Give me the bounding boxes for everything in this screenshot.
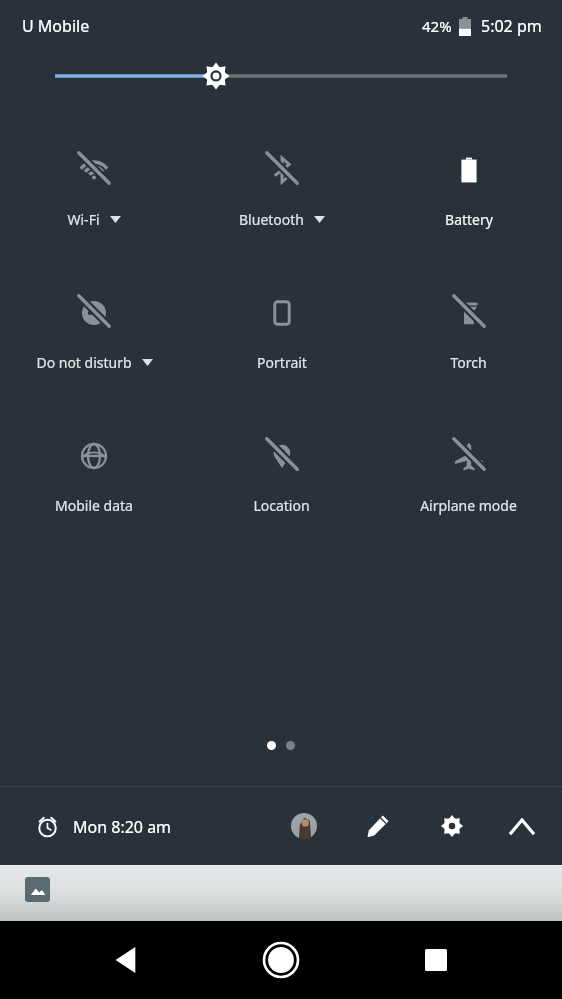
button[interactable]: Airplane mode [375, 430, 562, 521]
button[interactable]: User profile [286, 808, 322, 844]
staticText: Airplane mode [420, 496, 517, 515]
button[interactable]: Mon 8:20 am [36, 815, 172, 838]
staticText: 42% [422, 16, 452, 36]
staticText: Do not disturb [36, 353, 132, 372]
staticText: Mon 8:20 am [73, 816, 172, 838]
button[interactable]: Battery [375, 144, 562, 235]
staticText: Mobile data [55, 496, 133, 515]
button[interactable]: Edit [360, 808, 396, 844]
button[interactable]: Collapse [504, 808, 540, 844]
staticText: Portrait [257, 353, 307, 372]
button[interactable]: Back [99, 932, 155, 988]
button[interactable]: Location [188, 430, 375, 521]
button[interactable]: Mobile data [0, 430, 188, 521]
button[interactable]: Screenshot notification [25, 877, 50, 902]
button[interactable]: Settings [434, 808, 470, 844]
staticText: Torch [450, 353, 487, 372]
staticText: Battery [445, 210, 493, 229]
button[interactable]: Do not disturb [0, 287, 188, 378]
button[interactable]: Recent apps [408, 932, 464, 988]
staticText: U Mobile [22, 15, 90, 37]
button[interactable]: Torch [375, 287, 562, 378]
staticText: Location [253, 496, 310, 515]
button[interactable]: Bluetooth [188, 144, 375, 235]
staticText: Bluetooth [239, 210, 304, 229]
button[interactable]: Wi-Fi [0, 144, 188, 235]
button[interactable]: Home [253, 932, 309, 988]
button[interactable]: Portrait [188, 287, 375, 378]
button[interactable]: Brightness [0, 52, 562, 98]
staticText: Wi-Fi [67, 210, 100, 229]
staticText: 5:02 pm [481, 15, 542, 37]
